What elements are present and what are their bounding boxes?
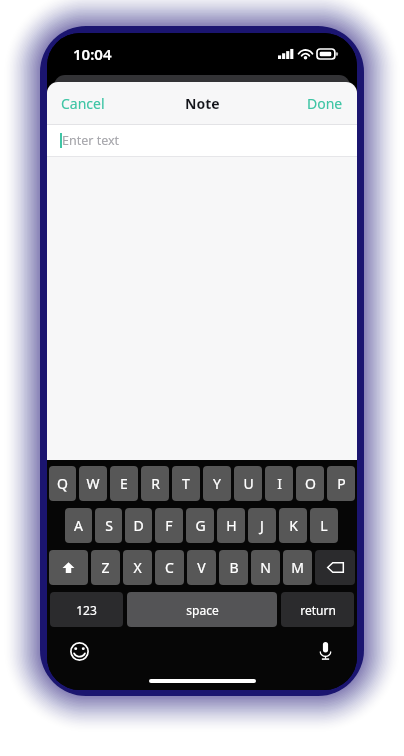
staticText: C xyxy=(165,558,174,577)
button[interactable]: Enter text xyxy=(47,125,357,156)
button[interactable]: H xyxy=(217,508,245,543)
button[interactable]: E xyxy=(110,466,138,501)
staticText: E xyxy=(120,474,128,493)
staticText: N xyxy=(260,558,271,577)
button[interactable]: Backspace xyxy=(315,550,355,585)
staticText: F xyxy=(165,516,173,535)
staticText: K xyxy=(289,516,298,535)
staticText: Done xyxy=(307,94,343,113)
staticText: U xyxy=(243,474,254,493)
staticText: Cancel xyxy=(61,94,105,113)
staticText: V xyxy=(197,558,206,577)
staticText: B xyxy=(229,558,239,577)
staticText: D xyxy=(133,516,144,535)
staticText: L xyxy=(320,516,328,535)
button[interactable]: Cancel xyxy=(47,85,119,122)
staticText: P xyxy=(337,474,346,493)
button[interactable]: F xyxy=(155,508,183,543)
staticText: A xyxy=(74,516,83,535)
button[interactable]: Emoji keyboard xyxy=(63,635,95,667)
button[interactable]: Q xyxy=(49,466,76,501)
button[interactable]: B xyxy=(219,550,248,585)
staticText: 10:04 xyxy=(73,44,112,64)
button[interactable]: N xyxy=(251,550,280,585)
button[interactable]: L xyxy=(310,508,338,543)
staticText: T xyxy=(182,474,190,493)
staticText: R xyxy=(151,474,160,493)
staticText: X xyxy=(133,558,142,577)
button[interactable]: M xyxy=(283,550,312,585)
button[interactable]: P xyxy=(327,466,355,501)
staticText: W xyxy=(86,474,100,493)
button[interactable]: Voice input xyxy=(309,635,341,667)
staticText: H xyxy=(226,516,237,535)
staticText: Q xyxy=(57,474,68,493)
staticText: J xyxy=(260,516,264,535)
button[interactable]: O xyxy=(296,466,324,501)
button[interactable]: U xyxy=(234,466,262,501)
button[interactable]: G xyxy=(186,508,214,543)
staticText: M xyxy=(291,558,304,577)
button[interactable]: R xyxy=(141,466,169,501)
staticText: Note xyxy=(185,94,220,113)
button[interactable]: S xyxy=(95,508,122,543)
button[interactable]: return xyxy=(281,592,354,627)
staticText: Z xyxy=(101,558,110,577)
button[interactable]: Y xyxy=(203,466,231,501)
staticText: space xyxy=(186,602,219,618)
button[interactable]: A xyxy=(65,508,92,543)
staticText: S xyxy=(105,516,113,535)
button[interactable]: 123 xyxy=(50,592,123,627)
button[interactable]: space xyxy=(127,592,277,627)
staticText: Y xyxy=(213,474,221,493)
staticText: return xyxy=(300,602,336,618)
button[interactable]: D xyxy=(125,508,152,543)
button[interactable]: V xyxy=(187,550,216,585)
staticText: G xyxy=(195,516,206,535)
button[interactable]: I xyxy=(265,466,293,501)
staticText: Enter text xyxy=(62,132,120,149)
button[interactable]: K xyxy=(279,508,307,543)
button[interactable]: Shift xyxy=(49,550,88,585)
button[interactable]: Done xyxy=(293,85,357,122)
button[interactable]: T xyxy=(172,466,200,501)
button[interactable]: C xyxy=(155,550,184,585)
button[interactable]: Z xyxy=(91,550,120,585)
staticText: I xyxy=(277,474,282,493)
button[interactable]: J xyxy=(248,508,276,543)
staticText: 123 xyxy=(76,602,97,618)
button[interactable]: X xyxy=(123,550,152,585)
staticText: O xyxy=(305,474,316,493)
button[interactable]: W xyxy=(79,466,107,501)
